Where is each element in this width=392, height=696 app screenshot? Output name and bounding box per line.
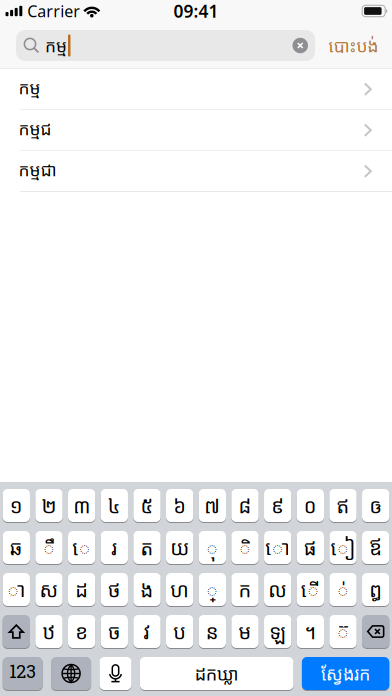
button[interactable]: Next keyboard <box>51 657 91 690</box>
button[interactable]: វ <box>133 615 161 648</box>
staticText: ុ <box>206 534 219 561</box>
staticText: កម្ម <box>45 34 67 57</box>
button[interactable]: ឹ <box>35 531 63 564</box>
staticText: កម្មជា <box>18 158 56 181</box>
button[interactable]: ក <box>231 573 259 606</box>
button[interactable]: ុ <box>199 531 226 564</box>
button[interactable]: ៦ <box>166 489 193 522</box>
staticText: ស្វែងរក <box>321 661 370 686</box>
button[interactable]: ឰ <box>362 573 389 606</box>
staticText: ឡ <box>269 618 286 645</box>
button[interactable]: ១ <box>3 489 30 522</box>
staticText: ិ <box>238 534 251 561</box>
button[interactable]: ◌ា <box>3 573 30 606</box>
button[interactable]: ៣ <box>68 489 95 522</box>
button[interactable]: ់ <box>329 573 357 606</box>
button[interactable]: ្ <box>199 573 226 606</box>
button[interactable]: ឋ <box>35 615 63 648</box>
button[interactable]: ហ <box>166 573 193 606</box>
button[interactable]: កម្មជ <box>0 110 392 151</box>
staticText: ដកឃ្លា <box>195 661 239 686</box>
staticText: ។ <box>304 618 316 645</box>
staticText: វ <box>143 618 150 645</box>
button[interactable]: ផ <box>297 531 324 564</box>
staticText: ១ <box>10 492 23 519</box>
staticText: កម្មជ <box>18 117 51 140</box>
button[interactable]: ឲ <box>362 489 389 522</box>
button[interactable]: ម <box>231 615 259 648</box>
staticText: រ <box>111 534 117 561</box>
button[interactable]: 123 <box>3 657 43 690</box>
staticText: ច <box>108 618 120 645</box>
button[interactable]: ត <box>133 531 161 564</box>
staticText: 123 <box>9 660 36 687</box>
staticText: 09:41 <box>173 0 218 22</box>
button[interactable]: ៩ <box>264 489 291 522</box>
button[interactable]: ស្វែងរក <box>302 657 389 690</box>
staticText: ៧ <box>204 492 220 519</box>
button[interactable]: ថ <box>101 573 128 606</box>
button[interactable]: កម្ម <box>0 69 392 110</box>
staticText: ៥ <box>140 492 153 519</box>
button[interactable]: Dictate <box>99 657 131 690</box>
staticText: ត <box>140 534 153 561</box>
button[interactable]: Clear text <box>292 38 308 53</box>
button[interactable]: បោះបង់ <box>315 30 392 61</box>
button[interactable]: ៀ <box>329 531 357 564</box>
staticText: ន <box>206 618 219 645</box>
staticText: ខ <box>75 618 88 645</box>
button[interactable]: ២ <box>35 489 63 522</box>
button[interactable]: ៊ <box>329 615 357 648</box>
button[interactable]: ើ <box>297 573 324 606</box>
button[interactable]: ៤ <box>101 489 128 522</box>
button[interactable]: ០ <box>297 489 324 522</box>
staticText: ប <box>173 618 186 645</box>
button[interactable]: កម្មជា <box>0 151 392 192</box>
button[interactable]: រ <box>101 531 128 564</box>
staticText: ឆ <box>10 534 23 561</box>
button[interactable]: ដ <box>68 573 95 606</box>
staticText: ឰ <box>369 576 382 603</box>
button[interactable]: ប <box>166 615 193 648</box>
button[interactable]: Shift <box>3 615 30 648</box>
button[interactable]: យ <box>166 531 193 564</box>
button[interactable]: ដកឃ្លា <box>140 657 293 690</box>
staticText: ឪ <box>369 534 382 561</box>
button[interactable]: ។ <box>297 615 324 648</box>
button[interactable]: ច <box>101 615 128 648</box>
staticText: ដ <box>75 576 88 603</box>
staticText: ឹ <box>42 534 55 561</box>
button[interactable]: េ <box>68 531 95 564</box>
button[interactable]: កម្ម <box>16 30 315 61</box>
staticText: ៤ <box>108 492 121 519</box>
button[interactable]: ឥ <box>329 489 357 522</box>
staticText: ៦ <box>173 492 186 519</box>
staticText: ថ <box>108 576 121 603</box>
button[interactable]: ៧ <box>199 489 226 522</box>
button[interactable]: ឪ <box>362 531 389 564</box>
button[interactable]: ល <box>264 573 291 606</box>
button[interactable]: ឆ <box>3 531 30 564</box>
button[interactable]: ិ <box>231 531 259 564</box>
staticText: ង <box>140 576 153 603</box>
staticText: ០ <box>304 492 317 519</box>
button[interactable]: ៥ <box>133 489 161 522</box>
button[interactable]: ស <box>35 573 63 606</box>
staticText: ើ <box>301 576 320 603</box>
button[interactable]: ោ <box>264 531 291 564</box>
button[interactable]: ខ <box>68 615 95 648</box>
staticText: ៩ <box>271 492 284 519</box>
staticText: ក <box>238 576 251 603</box>
staticText: ោ <box>265 534 290 561</box>
staticText: ឲ <box>370 492 382 519</box>
staticText: ៀ <box>330 534 355 561</box>
button[interactable]: ឡ <box>264 615 291 648</box>
button[interactable]: Delete <box>362 615 389 648</box>
staticText: ល <box>268 576 287 603</box>
staticText: ផ <box>304 534 317 561</box>
button[interactable]: ៨ <box>231 489 259 522</box>
staticText: ឥ <box>336 492 349 519</box>
staticText: បោះបង់ <box>328 34 378 57</box>
button[interactable]: ន <box>199 615 226 648</box>
button[interactable]: ង <box>133 573 161 606</box>
